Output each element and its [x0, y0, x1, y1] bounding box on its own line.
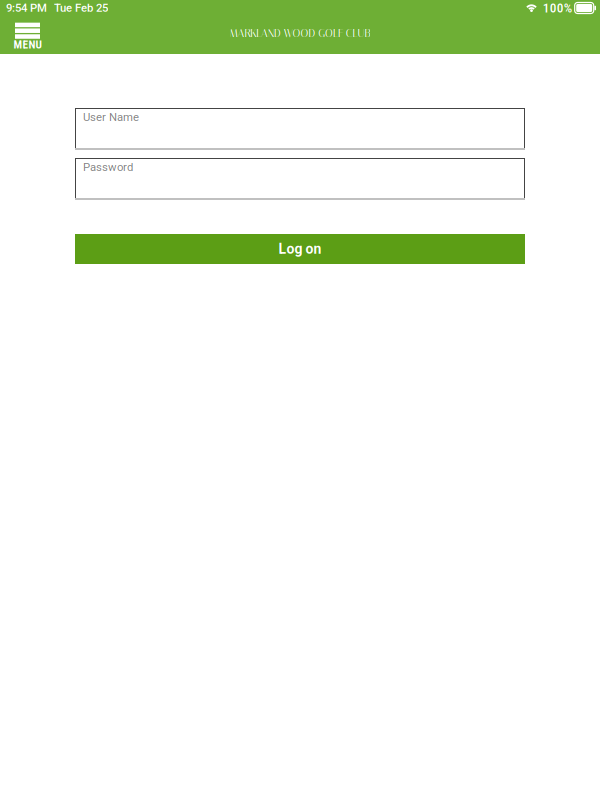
staticText: MENU — [13, 38, 41, 51]
button[interactable]: User Name — [75, 108, 525, 150]
staticText: Password — [83, 160, 133, 174]
staticText: MARKLAND WOOD GOLF CLUB — [230, 27, 370, 40]
staticText: Log on — [278, 241, 321, 257]
staticText: 100% — [543, 0, 572, 16]
button[interactable]: Password — [75, 158, 525, 200]
staticText: Tue Feb 25 — [54, 1, 108, 15]
button[interactable]: Log on — [75, 234, 525, 264]
button[interactable]: Menu — [0, 19, 40, 51]
staticText: 9:54 PM — [6, 1, 47, 15]
staticText: User Name — [83, 110, 139, 124]
